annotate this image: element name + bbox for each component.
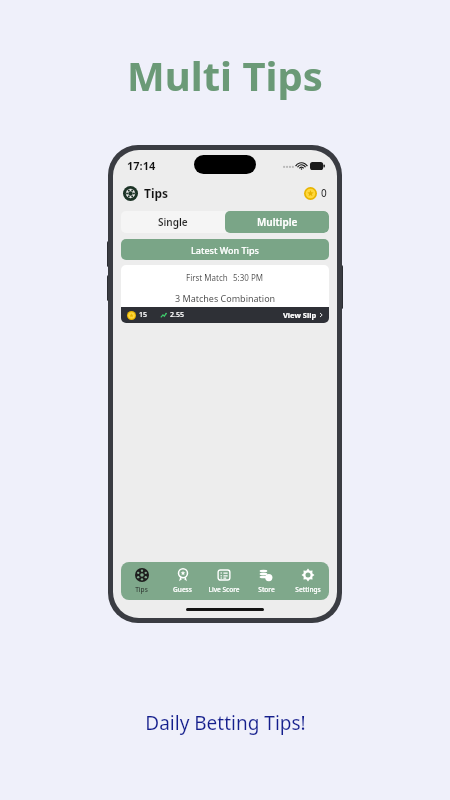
staticText: Multiple <box>257 215 298 229</box>
staticText: Store <box>258 585 275 594</box>
staticText: Guess <box>173 585 192 594</box>
button[interactable]: Latest Won Tips <box>121 239 329 260</box>
button[interactable]: First Match <box>121 265 329 323</box>
button[interactable]: Store <box>245 562 287 600</box>
button[interactable]: 0 <box>304 186 327 200</box>
staticText: Daily Betting Tips! <box>145 710 306 736</box>
staticText: 3 Matches Combination <box>175 292 276 304</box>
staticText: Multi Tips <box>127 48 323 102</box>
staticText: 17:14 <box>127 158 156 173</box>
button[interactable]: Guess <box>162 562 203 600</box>
staticText: 5:30 PM <box>233 272 264 283</box>
button[interactable]: Multiple <box>225 211 329 233</box>
staticText: Single <box>158 215 188 229</box>
staticText: 15 <box>139 310 148 320</box>
staticText: Tips <box>144 185 169 201</box>
staticText: Latest Won Tips <box>191 244 259 256</box>
staticText: Tips <box>135 585 148 594</box>
button[interactable]: Single <box>121 211 225 233</box>
staticText: Settings <box>295 585 321 594</box>
staticText: First Match <box>186 272 228 283</box>
staticText: View Slip <box>283 310 317 320</box>
button[interactable]: Tips <box>121 562 162 600</box>
staticText: Live Score <box>208 585 240 594</box>
staticText: 2.55 <box>170 310 184 320</box>
other: App logo <box>123 186 138 201</box>
button[interactable]: View Slip <box>283 310 323 320</box>
staticText: 0 <box>321 186 327 200</box>
button[interactable]: Live Score <box>203 562 245 600</box>
button[interactable]: Settings <box>287 562 329 600</box>
